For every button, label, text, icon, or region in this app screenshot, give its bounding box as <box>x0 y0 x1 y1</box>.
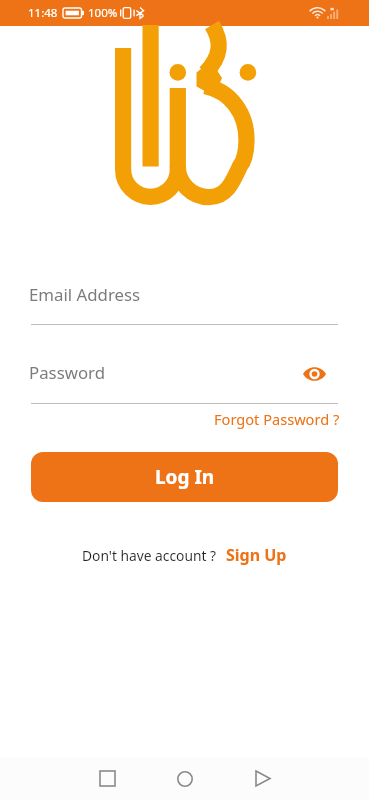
staticText: Sign Up <box>226 544 287 566</box>
button[interactable]: Back <box>239 757 287 800</box>
staticText: Password <box>29 361 105 384</box>
staticText: Email Address <box>29 283 141 306</box>
button[interactable]: Email Address <box>29 283 141 306</box>
button[interactable]: Forgot Password ? <box>214 409 340 429</box>
button[interactable]: Log In <box>31 452 338 502</box>
staticText: 11:48 <box>28 5 58 21</box>
button[interactable]: Show password <box>302 363 326 385</box>
button[interactable]: Home <box>161 757 209 800</box>
staticText: Don't have account ? <box>82 546 217 565</box>
button[interactable]: Recent apps <box>83 757 131 800</box>
staticText: Log In <box>155 464 215 490</box>
button[interactable]: Password <box>29 361 105 384</box>
staticText: Forgot Password ? <box>214 409 340 429</box>
staticText: 100% <box>88 5 118 21</box>
button[interactable]: Sign Up <box>226 544 287 566</box>
